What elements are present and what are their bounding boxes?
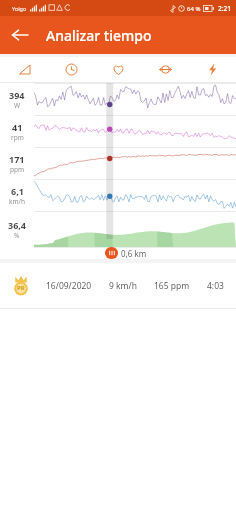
staticText: Analizar tiempo xyxy=(46,26,152,45)
staticText: 0,6 km xyxy=(121,248,147,259)
staticText: PR xyxy=(17,284,25,292)
staticText: ppm xyxy=(10,165,25,174)
staticText: 9 km/h xyxy=(109,280,137,292)
staticText: 41 xyxy=(12,121,23,133)
button[interactable]: Heart rate xyxy=(95,57,142,82)
staticText: 6,1 xyxy=(11,185,24,197)
staticText: % xyxy=(14,231,20,240)
staticText: 394 xyxy=(9,89,25,101)
staticText: Yoigo xyxy=(12,5,27,12)
button[interactable]: Cadence xyxy=(142,57,189,82)
button[interactable]: 0,6 km xyxy=(105,247,147,259)
staticText: 2:21 xyxy=(218,4,231,13)
button[interactable]: Back xyxy=(5,20,35,50)
staticText: 36,4 xyxy=(8,219,27,231)
button[interactable]: PR xyxy=(0,263,236,309)
button[interactable]: Power xyxy=(189,57,236,82)
staticText: 165 ppm xyxy=(154,280,190,292)
staticText: rpm xyxy=(11,133,24,142)
staticText: 171 xyxy=(9,153,25,165)
staticText: 16/09/2020 xyxy=(46,280,92,292)
button[interactable]: Time xyxy=(48,57,95,82)
staticText: W xyxy=(14,101,21,110)
button[interactable]: Incline xyxy=(0,57,48,82)
staticText: km/h xyxy=(9,197,25,206)
staticText: 64 % xyxy=(187,5,201,13)
staticText: 4:03 xyxy=(207,280,224,292)
